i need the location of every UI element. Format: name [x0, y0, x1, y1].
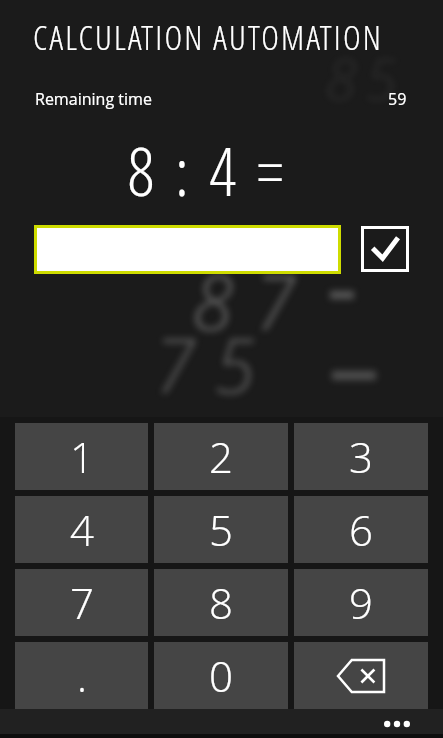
staticText: 8	[209, 574, 233, 631]
staticText: 85	[325, 38, 405, 117]
staticText: 59	[388, 88, 407, 110]
button[interactable]: 9	[294, 569, 428, 636]
staticText: 87	[192, 250, 315, 352]
button[interactable]: 3	[294, 423, 428, 490]
button[interactable]: 6	[294, 496, 428, 563]
staticText: 8 : 4 =	[0, 124, 429, 215]
staticText: 7	[70, 574, 94, 631]
button[interactable]: 4	[15, 496, 148, 563]
button[interactable]	[384, 720, 410, 728]
staticText: 6	[349, 501, 373, 558]
staticText: 75	[153, 313, 276, 415]
button[interactable]	[294, 642, 428, 709]
button[interactable]: 1	[15, 423, 148, 490]
staticText: 2	[209, 428, 233, 485]
button[interactable]: 2	[154, 423, 288, 490]
staticText: 1	[70, 428, 94, 485]
button[interactable]	[361, 226, 409, 272]
staticText: 5	[209, 501, 233, 558]
staticText: 3	[349, 428, 373, 485]
button[interactable]: 5	[154, 496, 288, 563]
button[interactable]: 8	[154, 569, 288, 636]
button[interactable]: .	[15, 642, 148, 709]
staticText: 4	[70, 501, 94, 558]
staticText: 0	[209, 647, 233, 704]
button[interactable]: 7	[15, 569, 148, 636]
button[interactable]	[34, 225, 341, 274]
button[interactable]: 0	[154, 642, 288, 709]
staticText: CALCULATION AUTOMATION	[33, 14, 384, 60]
staticText: .	[77, 647, 87, 704]
staticText: 9	[349, 574, 373, 631]
staticText: Remaining time	[35, 88, 152, 110]
